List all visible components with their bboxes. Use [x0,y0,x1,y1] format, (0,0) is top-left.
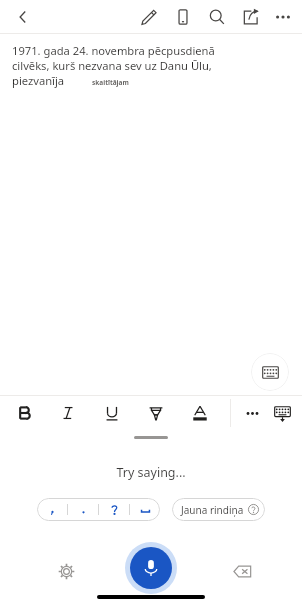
button[interactable]: Underline [98,399,126,427]
button[interactable]: Show keyboard [251,353,289,391]
button[interactable]: Edit [134,2,164,32]
button[interactable]: Bold [10,399,38,427]
button[interactable]: More formatting [238,399,266,427]
button[interactable]: Highlight [142,399,170,427]
button[interactable]: Phone view [168,2,198,32]
button[interactable]: Microphone [125,542,177,594]
button[interactable]: Backspace [226,555,258,587]
button[interactable]: Share [236,2,266,32]
button[interactable]: Settings [50,555,82,587]
button[interactable]: Punctuation [37,498,160,521]
staticText: Try saying... [0,464,302,481]
staticText: 1971. gada 24. novembra pēcpusdienā [12,43,215,58]
staticText: cilvēks, kurš nezvana sev uz Danu Ūlu, [12,58,212,73]
button[interactable]: Italic [54,399,82,427]
button[interactable]: Back [8,2,38,32]
button[interactable]: Font color [186,399,214,427]
button[interactable]: Jauna rindiņa [172,498,265,521]
staticText: skaitītājam [92,78,129,87]
staticText: piezvanīja [12,73,65,88]
button[interactable]: Search [202,2,232,32]
staticText: Jauna rindiņa [181,503,244,517]
button[interactable]: Hide keyboard [268,399,296,427]
button[interactable]: More options [268,2,298,32]
